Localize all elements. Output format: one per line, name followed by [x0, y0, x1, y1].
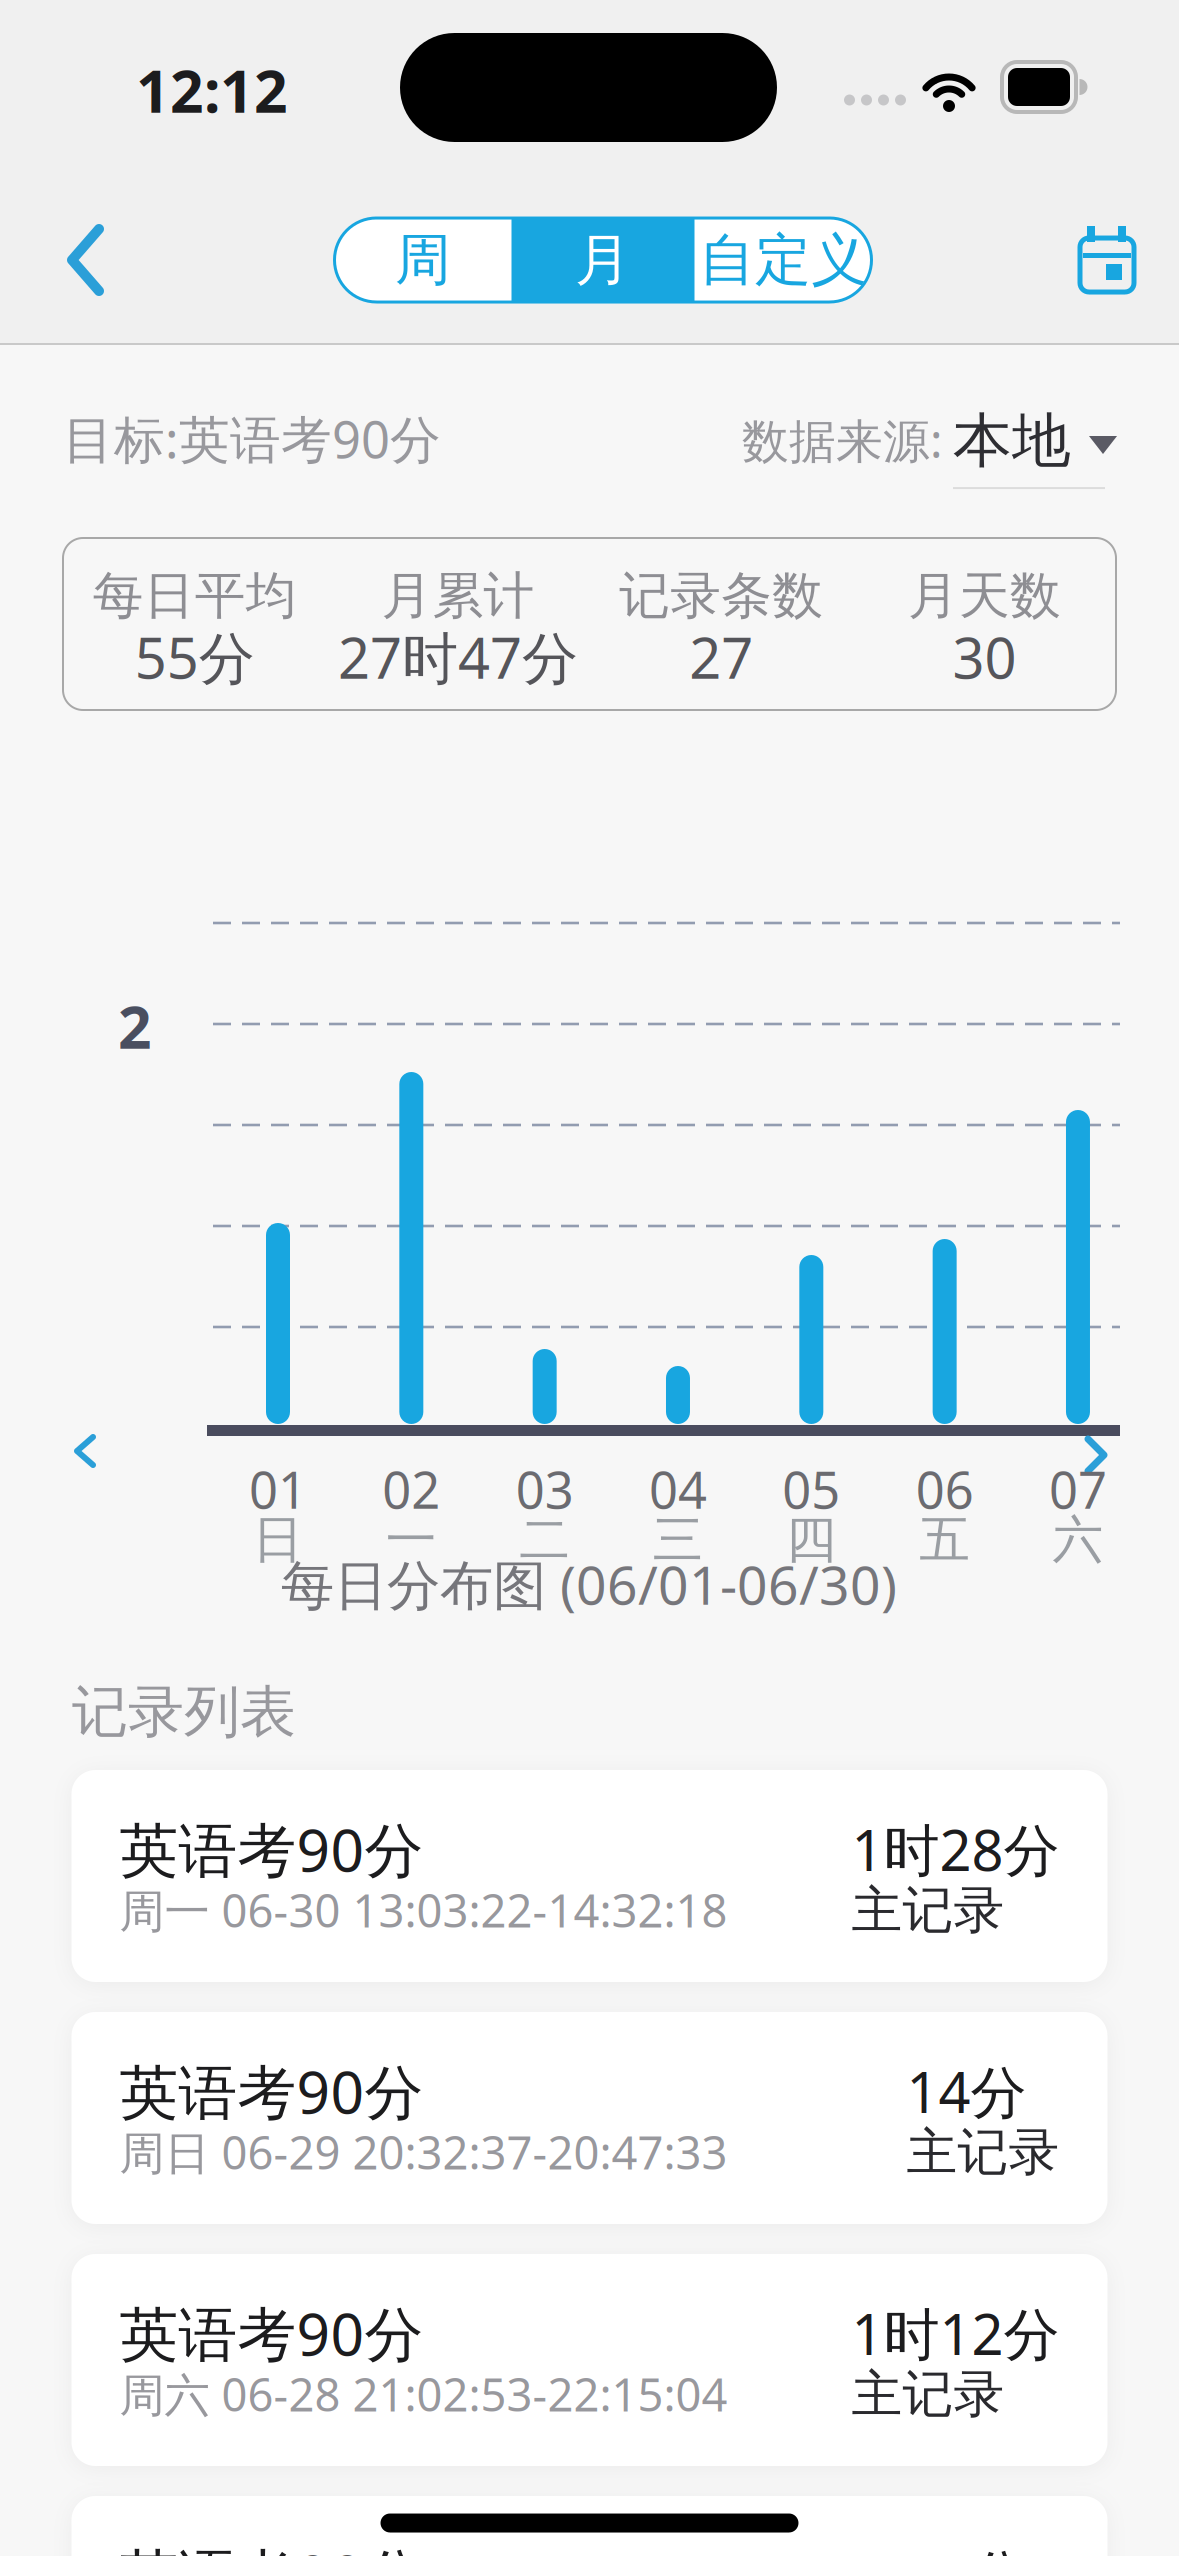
staticText: 记录列表 [72, 1678, 296, 1746]
button[interactable]: 周 [334, 218, 511, 302]
staticText: 数据来源: [742, 409, 943, 471]
button[interactable]: Next [1077, 1428, 1115, 1482]
staticText: 每日平均 [93, 565, 297, 627]
staticText: 六 [1052, 1509, 1103, 1571]
button[interactable]: 英语考90分 [71, 2496, 1107, 2556]
staticText: 四 [786, 1509, 837, 1571]
staticText: 55分 [135, 620, 255, 694]
staticText: 周日 06-29 20:32:37-20:47:33 [119, 2122, 727, 2182]
staticText: 03 [516, 1455, 574, 1523]
staticText: 英语考90分 [119, 2294, 423, 2372]
staticText: 目标:英语考90分 [63, 405, 441, 472]
staticText: 30 [952, 620, 1016, 694]
staticText: 日 [252, 1509, 303, 1571]
staticText: 五 [919, 1509, 970, 1571]
staticText: 04 [649, 1455, 707, 1523]
staticText: 主记录 [851, 2363, 1004, 2426]
staticText: 12:12 [136, 51, 288, 129]
staticText: 自定义 [699, 226, 867, 294]
staticText: 本地 [953, 405, 1071, 477]
staticText: 月 [575, 226, 631, 294]
staticText: 主记录 [851, 1879, 1004, 1942]
staticText: 主记录 [906, 2121, 1059, 2184]
staticText: 27 [689, 620, 753, 694]
staticText: 每日分布图 (06/01-06/30) [281, 1549, 897, 1619]
staticText: 06 [916, 1455, 974, 1523]
staticText: 月天数 [908, 565, 1061, 627]
button[interactable]: 自定义 [694, 218, 871, 302]
staticText: 周 [395, 226, 451, 294]
button[interactable]: 英语考90分 [71, 2012, 1107, 2224]
staticText: 三 [652, 1509, 703, 1571]
staticText: 英语考90分 [119, 2052, 423, 2130]
staticText: 46分 [906, 2538, 1026, 2556]
staticText: 二 [519, 1509, 570, 1571]
staticText: 记录条数 [619, 565, 823, 627]
staticText: 07 [1049, 1455, 1107, 1523]
staticText: 周一 06-30 13:03:22-14:32:18 [119, 1880, 727, 1940]
button[interactable]: Previous [66, 1426, 104, 1476]
button[interactable]: Back [59, 216, 113, 304]
staticText: 英语考90分 [119, 2536, 423, 2556]
staticText: 月累计 [381, 565, 534, 627]
staticText: 14分 [906, 2054, 1026, 2128]
staticText: 1时12分 [851, 2296, 1059, 2370]
button[interactable]: 月 [511, 218, 694, 302]
staticText: 27时47分 [338, 620, 578, 694]
staticText: 2 [118, 987, 152, 1065]
button[interactable]: 数据来源 [953, 405, 1117, 477]
staticText: 英语考90分 [119, 1810, 423, 1888]
staticText: 周六 06-28 21:02:53-22:15:04 [119, 2364, 727, 2424]
staticText: 一 [386, 1509, 437, 1571]
staticText: 02 [382, 1455, 440, 1523]
button[interactable]: Pick date [1073, 220, 1141, 298]
staticText: 05 [782, 1455, 840, 1523]
staticText: 01 [249, 1455, 307, 1523]
button[interactable]: 英语考90分 [71, 2254, 1107, 2466]
staticText: 1时28分 [851, 1812, 1059, 1886]
button[interactable]: 英语考90分 [71, 1770, 1107, 1982]
